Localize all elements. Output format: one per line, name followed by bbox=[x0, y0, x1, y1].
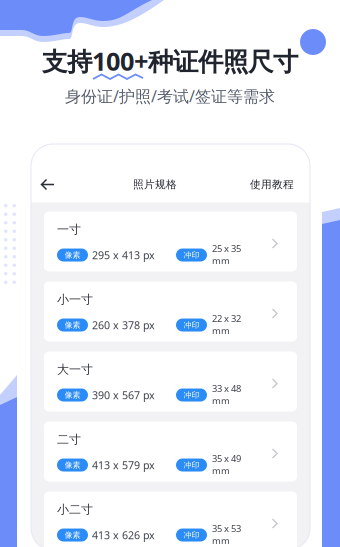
staticText: 小一寸 bbox=[57, 292, 93, 307]
button[interactable]: 大一寸 bbox=[44, 351, 297, 411]
staticText: 小二寸 bbox=[57, 502, 93, 517]
staticText: 413 x 579 px bbox=[92, 458, 155, 472]
staticText: 冲印 bbox=[183, 390, 199, 400]
staticText: 25 x 35 bbox=[212, 242, 241, 254]
button[interactable]: 小一寸 bbox=[44, 281, 297, 341]
staticText: 使用教程 bbox=[250, 178, 294, 191]
button[interactable]: 使用教程 bbox=[240, 170, 304, 198]
staticText: 295 x 413 px bbox=[92, 248, 155, 262]
staticText: 支持100+种证件照尺寸 bbox=[42, 44, 298, 78]
staticText: 260 x 378 px bbox=[92, 318, 155, 332]
staticText: 冲印 bbox=[183, 250, 199, 260]
staticText: 22 x 32 bbox=[212, 312, 241, 324]
staticText: 像素 bbox=[64, 390, 80, 400]
staticText: mm bbox=[212, 464, 230, 477]
staticText: 413 x 626 px bbox=[92, 528, 155, 542]
staticText: mm bbox=[212, 254, 230, 267]
staticText: 大一寸 bbox=[57, 362, 93, 377]
button[interactable]: Back bbox=[31, 168, 65, 200]
staticText: 33 x 48 bbox=[212, 382, 241, 394]
staticText: mm bbox=[212, 534, 230, 547]
staticText: 一寸 bbox=[57, 222, 81, 237]
staticText: 二寸 bbox=[57, 432, 81, 447]
staticText: 冲印 bbox=[183, 320, 199, 330]
staticText: 390 x 567 px bbox=[92, 388, 155, 402]
button[interactable]: 小二寸 bbox=[44, 491, 297, 547]
staticText: 冲印 bbox=[183, 460, 199, 470]
staticText: 像素 bbox=[64, 460, 80, 470]
staticText: 照片规格 bbox=[133, 178, 177, 191]
staticText: 冲印 bbox=[183, 530, 199, 540]
staticText: 像素 bbox=[64, 320, 80, 330]
staticText: 35 x 49 bbox=[212, 452, 241, 464]
staticText: 35 x 53 bbox=[212, 522, 241, 534]
staticText: 身份证/护照/考试/签证等需求 bbox=[65, 85, 275, 107]
button[interactable]: 一寸 bbox=[44, 211, 297, 271]
staticText: mm bbox=[212, 324, 230, 337]
staticText: mm bbox=[212, 394, 230, 407]
staticText: 像素 bbox=[64, 250, 80, 260]
button[interactable]: 二寸 bbox=[44, 421, 297, 481]
staticText: 像素 bbox=[64, 530, 80, 540]
